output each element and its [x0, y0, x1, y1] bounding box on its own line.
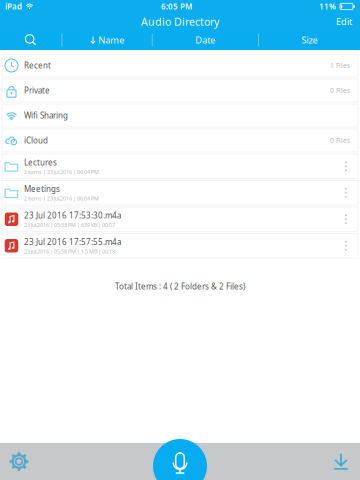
staticText: Size — [301, 34, 317, 46]
staticText: Name — [98, 34, 124, 46]
staticText: Private — [24, 85, 50, 96]
button[interactable]: Recent — [2, 54, 358, 77]
button[interactable]: Name — [62, 30, 152, 50]
staticText: 23 Jul,2016 | 05:58 PM | 1.5 MB | 00:18 — [24, 248, 115, 255]
staticText: Wifi Sharing — [24, 110, 68, 121]
staticText: 6:05 PM — [161, 1, 192, 12]
staticText: 0 Files — [330, 86, 350, 95]
button[interactable]: Private — [2, 79, 358, 102]
staticText: 1 Files — [330, 61, 350, 70]
button[interactable]: 23 Jul 2016 17:53:30.m4a — [2, 207, 358, 231]
button[interactable]: Size — [259, 30, 360, 50]
button[interactable]: Download — [322, 443, 360, 480]
button[interactable]: Record — [153, 439, 207, 480]
button[interactable]: Wifi Sharing — [2, 104, 358, 127]
staticText: Lectures — [24, 157, 57, 168]
staticText: 23 Jul 2016 17:53:30.m4a — [24, 210, 121, 221]
button[interactable]: 23 Jul 2016 17:57:55.m4a — [2, 233, 358, 258]
button[interactable]: Search — [0, 30, 61, 50]
staticText: 2 items | 23 Jul,2016 | 06:04 PM — [24, 195, 99, 202]
button[interactable]: Lectures — [2, 154, 358, 178]
staticText: 2 items | 23 Jul,2016 | 06:04 PM — [24, 168, 99, 175]
staticText: Audio Directory — [141, 14, 219, 29]
button[interactable]: Date — [153, 30, 258, 50]
staticText: Recent — [24, 60, 51, 71]
staticText: iCloud — [24, 135, 48, 146]
staticText: 11% — [319, 1, 336, 12]
staticText: Meetings — [24, 184, 60, 194]
staticText: Date — [195, 34, 215, 46]
button[interactable]: Settings — [0, 443, 38, 480]
staticText: 23 Jul 2016 17:57:55.m4a — [24, 237, 121, 247]
staticText: 23 Jul,2016 | 05:53 PM | 639 KB | 00:07 — [24, 221, 115, 228]
button[interactable]: Meetings — [2, 180, 358, 205]
staticText: iPad — [5, 1, 22, 12]
staticText: Edit — [336, 15, 352, 28]
button[interactable]: iCloud — [2, 129, 358, 152]
staticText: Total Items : 4 ( 2 Folders & 2 Files) — [115, 281, 245, 292]
staticText: 0 Files — [330, 136, 350, 145]
button[interactable]: Edit — [328, 12, 360, 31]
